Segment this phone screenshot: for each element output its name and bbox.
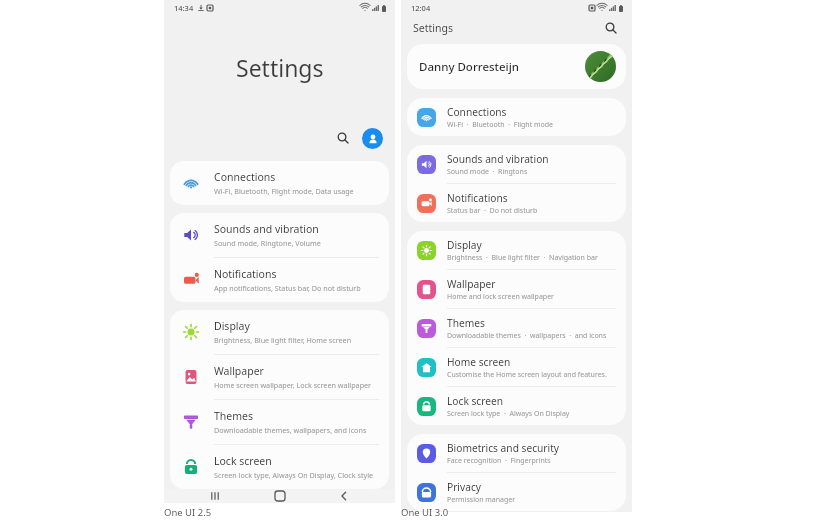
staticText: Screen lock type, Always On Display, Clo… (214, 470, 374, 480)
button[interactable]: Wallpaper (170, 355, 389, 399)
staticText: Status bar · Do not disturb (447, 206, 538, 216)
staticText: Display (214, 319, 250, 333)
button[interactable]: Themes (170, 400, 389, 444)
staticText: Wallpaper (214, 364, 264, 378)
button[interactable]: Notifications (170, 258, 389, 302)
button[interactable]: Biometrics and security (407, 434, 626, 472)
button[interactable]: Display (407, 231, 626, 269)
staticText: Display (447, 238, 482, 252)
staticText: Downloadable themes · wallpapers · and i… (447, 331, 607, 341)
staticText: Connections (214, 170, 276, 184)
staticText: Home screen (447, 355, 511, 369)
staticText: Sounds and vibration (214, 222, 319, 236)
staticText: Home screen wallpaper, Lock screen wallp… (214, 380, 372, 390)
button[interactable]: Search (601, 18, 621, 38)
staticText: Customise the Home screen layout and fea… (447, 370, 607, 380)
button[interactable]: Wallpaper (407, 270, 626, 308)
staticText: Downloadable themes, wallpapers, and ico… (214, 425, 367, 435)
staticText: Lock screen (447, 394, 504, 408)
button[interactable]: Danny Dorresteijn (407, 44, 626, 89)
staticText: Settings (236, 52, 324, 83)
button[interactable]: Back (330, 489, 358, 503)
button[interactable]: Notifications (407, 184, 626, 222)
staticText: Themes (447, 316, 485, 330)
staticText: One UI 2.5 (164, 506, 212, 519)
staticText: Screen lock type · Always On Display (447, 409, 570, 419)
staticText: Biometrics and security (447, 441, 560, 455)
staticText: Brightness · Blue light filter · Navigat… (447, 253, 598, 263)
staticText: Lock screen (214, 454, 272, 468)
staticText: Sound mode, Ringtone, Volume (214, 238, 321, 248)
staticText: Permission manager (447, 495, 516, 505)
staticText: Sound mode · Ringtons (447, 167, 528, 177)
staticText: 12:04 (411, 3, 431, 13)
button[interactable]: Display (170, 310, 389, 354)
button[interactable]: Home screen (407, 348, 626, 386)
staticText: Notifications (214, 267, 277, 281)
button[interactable]: Sounds and vibration (407, 145, 626, 183)
button[interactable]: Lock screen (170, 445, 389, 489)
staticText: Themes (214, 409, 254, 423)
button[interactable]: Lock screen (407, 387, 626, 425)
staticText: Danny Dorresteijn (419, 59, 520, 75)
staticText: Wi-Fi, Bluetooth, Flight mode, Data usag… (214, 186, 354, 196)
staticText: Notifications (447, 191, 508, 205)
button[interactable]: Sounds and vibration (170, 213, 389, 257)
staticText: Settings (413, 21, 453, 35)
staticText: Face recognition · Fingerprints (447, 456, 551, 466)
staticText: Connections (447, 105, 507, 119)
staticText: Sounds and vibration (447, 152, 549, 166)
staticText: Privacy (447, 480, 481, 494)
button[interactable]: Themes (407, 309, 626, 347)
staticText: One UI 3.0 (401, 506, 449, 519)
button[interactable]: Connections (407, 98, 626, 136)
staticText: Wallpaper (447, 277, 496, 291)
staticText: App notifications, Status bar, Do not di… (214, 283, 361, 293)
button[interactable]: Connections (170, 161, 389, 205)
button[interactable]: Home (266, 489, 294, 503)
button[interactable]: Privacy (407, 473, 626, 511)
staticText: Wi-Fi · Bluetooth · Flight mode (447, 120, 554, 130)
button[interactable]: Recents (201, 489, 229, 503)
staticText: Brightness, Blue light filter, Home scre… (214, 335, 352, 345)
staticText: 14:34 (174, 3, 194, 13)
button[interactable]: Search (332, 127, 354, 149)
staticText: Home and lock screen wallpaper (447, 292, 554, 302)
button[interactable]: Account (362, 128, 383, 149)
